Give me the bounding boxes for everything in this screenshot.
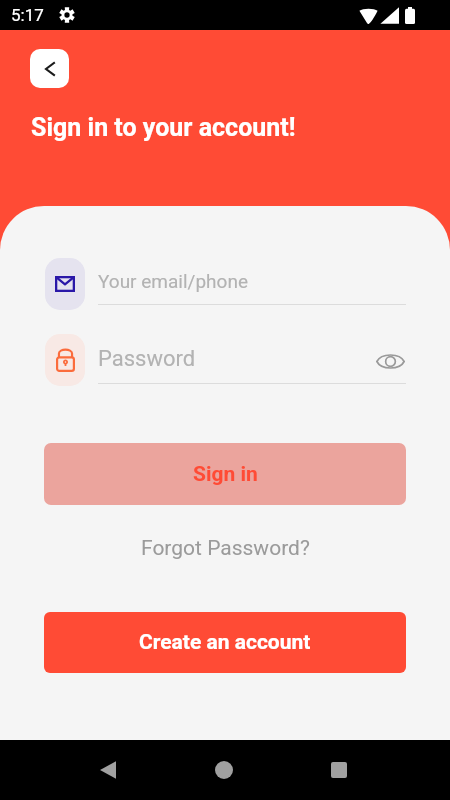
staticText: Your email/phone [98, 270, 406, 292]
staticText: 5:17 [11, 5, 44, 25]
button[interactable]: Sign in [44, 443, 406, 505]
button[interactable]: Create an account [44, 612, 406, 673]
staticText: Sign in [193, 462, 258, 487]
staticText: Sign in to your account! [31, 113, 296, 142]
button[interactable]: Back [83, 745, 133, 795]
button[interactable]: Back [30, 49, 69, 88]
button[interactable]: Forgot Password? [131, 528, 320, 569]
staticText: Create an account [139, 630, 311, 655]
button[interactable]: Home [199, 745, 249, 795]
button[interactable]: Show password [374, 348, 406, 374]
button[interactable]: Recents [314, 745, 364, 795]
staticText: Password [98, 346, 374, 372]
